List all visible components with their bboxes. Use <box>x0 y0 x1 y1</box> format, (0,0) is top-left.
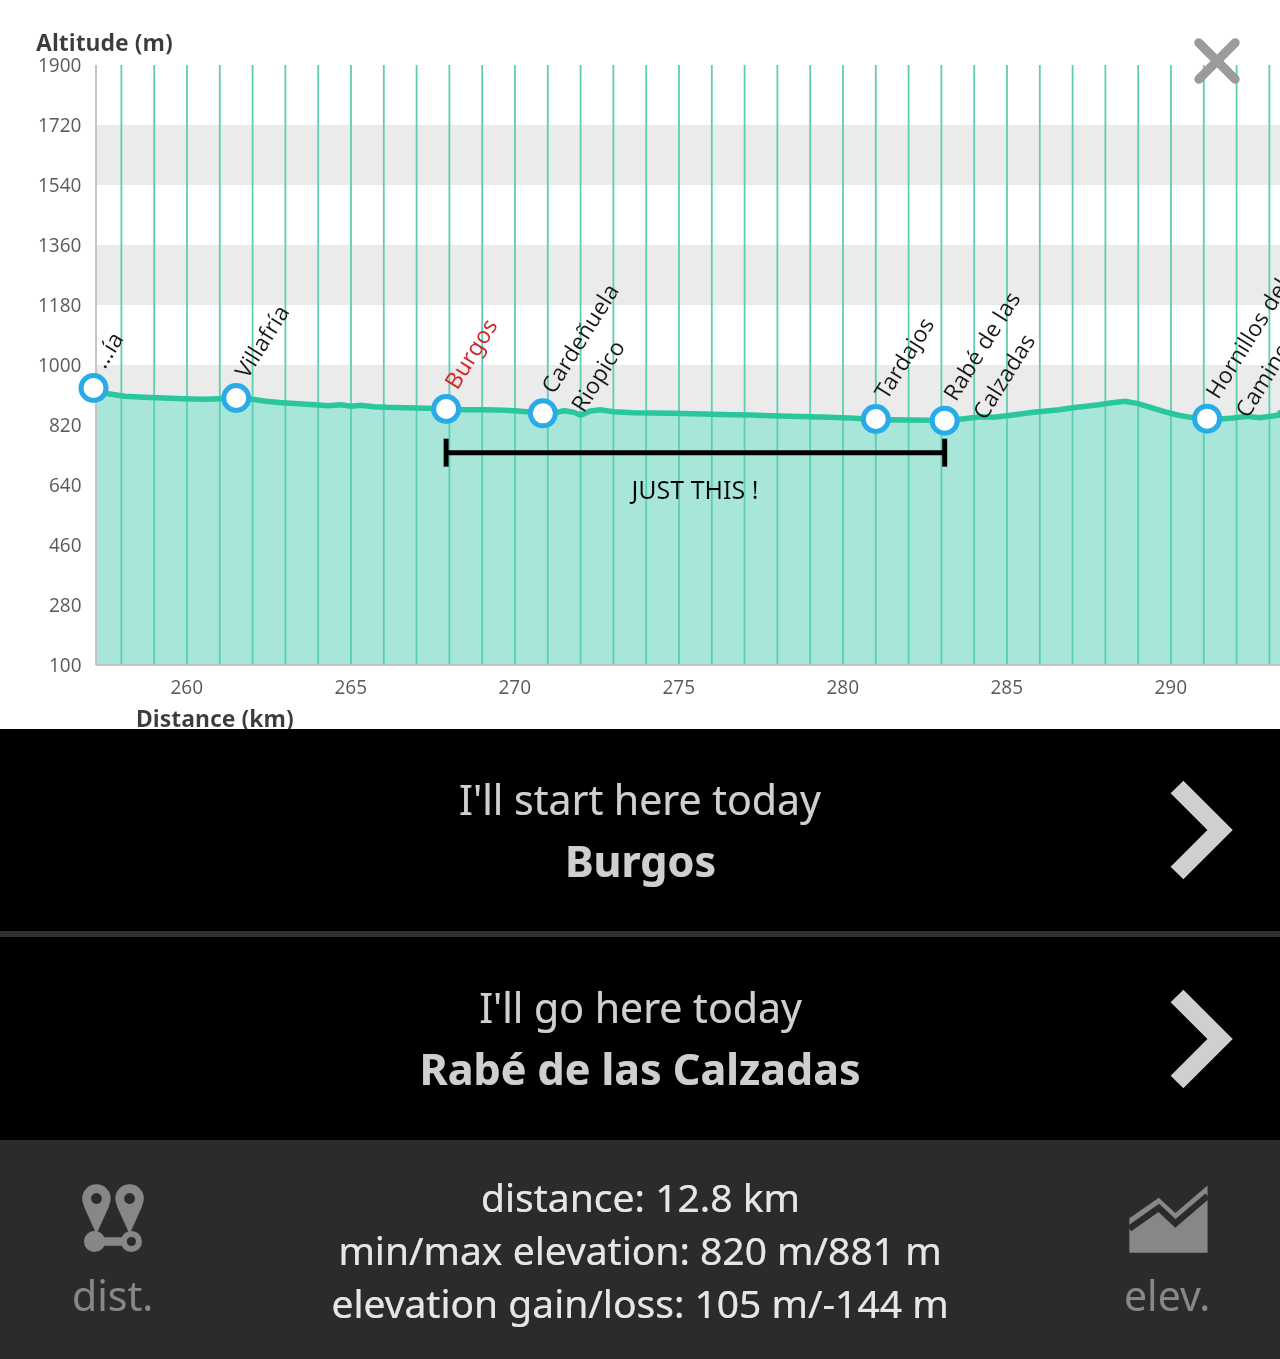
staticText: elevation gain/loss: 105 m/-144 m <box>331 1276 949 1329</box>
staticText: distance: 12.8 km <box>481 1170 800 1223</box>
staticText: Rabé de las Calzadas <box>419 1039 861 1098</box>
button[interactable]: Elevation <box>1085 1177 1250 1323</box>
button[interactable]: Distance <box>30 1177 195 1323</box>
staticText: I'll go here today <box>479 979 802 1035</box>
staticText: min/max elevation: 820 m/881 m <box>338 1223 942 1276</box>
button[interactable]: Start point Burgos <box>0 729 1280 931</box>
staticText: elev. <box>1124 1267 1211 1323</box>
button[interactable]: Close <box>1182 26 1252 96</box>
staticText: Burgos <box>565 831 716 890</box>
staticText: dist. <box>72 1267 154 1323</box>
staticText: I'll start here today <box>459 771 821 827</box>
button[interactable]: Destination Rabé de las Calzadas <box>0 937 1280 1140</box>
